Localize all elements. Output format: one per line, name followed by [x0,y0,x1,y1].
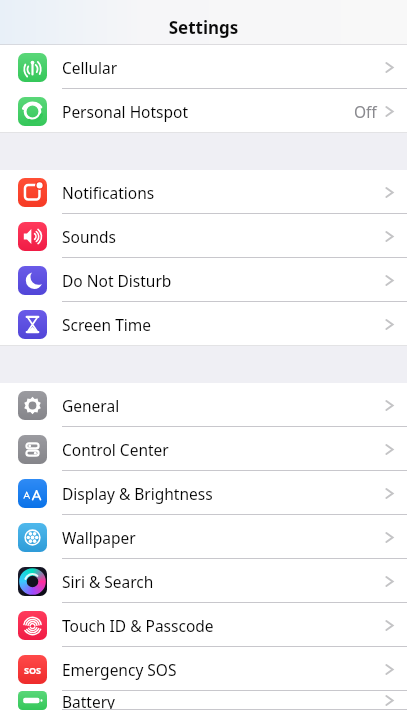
button[interactable]: Notifications [0,170,407,214]
staticText: Notifications [62,182,155,203]
button[interactable]: General [0,383,407,427]
staticText: Display & Brightness [62,483,213,504]
staticText: Cellular [62,57,118,78]
button[interactable]: SOS [0,647,407,691]
staticText: General [62,395,120,416]
button[interactable]: Battery [0,691,407,710]
staticText: Sounds [62,226,117,247]
staticText: Screen Time [62,314,151,335]
staticText: SOS [24,664,42,676]
staticText: Siri & Search [62,571,154,592]
staticText: Emergency SOS [62,659,177,680]
button[interactable]: Control Center [0,427,407,471]
button[interactable]: Cellular [0,45,407,89]
button[interactable]: Personal Hotspot [0,89,407,133]
staticText: Personal Hotspot [62,101,189,122]
button[interactable]: Do Not Disturb [0,258,407,302]
button[interactable]: Siri & Search [0,559,407,603]
staticText: Off [354,101,377,122]
staticText: Battery [62,691,116,710]
staticText: Settings [0,16,407,39]
staticText: Do Not Disturb [62,270,172,291]
button[interactable]: Display & Brightness [0,471,407,515]
button[interactable]: Wallpaper [0,515,407,559]
staticText: Control Center [62,439,169,460]
button[interactable]: Sounds [0,214,407,258]
button[interactable]: Screen Time [0,302,407,346]
staticText: Touch ID & Passcode [62,615,214,636]
staticText: Wallpaper [62,527,136,548]
button[interactable]: Touch ID & Passcode [0,603,407,647]
